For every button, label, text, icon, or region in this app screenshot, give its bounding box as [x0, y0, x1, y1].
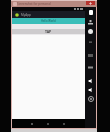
button[interactable]: Zoom	[85, 28, 96, 35]
button[interactable]: Back	[26, 119, 37, 128]
button[interactable]: Rotate left	[85, 19, 96, 26]
button[interactable]: Screenshot	[85, 52, 96, 59]
button[interactable]: TAP	[12, 29, 85, 34]
button[interactable]: Record	[85, 64, 96, 71]
button[interactable]: Power	[85, 9, 96, 16]
button[interactable]: Recents	[58, 119, 69, 128]
button[interactable]: Back	[85, 39, 96, 46]
staticText: Screenshot for personal	[17, 2, 51, 6]
staticText: TAP	[45, 29, 52, 34]
button[interactable]: Volume up	[85, 77, 96, 84]
button[interactable]: Volume down	[85, 86, 96, 93]
staticText: MyApp	[21, 13, 31, 17]
button[interactable]: Close	[86, 1, 95, 5]
button[interactable]: MyApp	[12, 11, 85, 18]
button[interactable]: Home	[42, 119, 53, 128]
staticText: Hello World	[41, 19, 56, 23]
button[interactable]: Settings	[85, 95, 96, 102]
